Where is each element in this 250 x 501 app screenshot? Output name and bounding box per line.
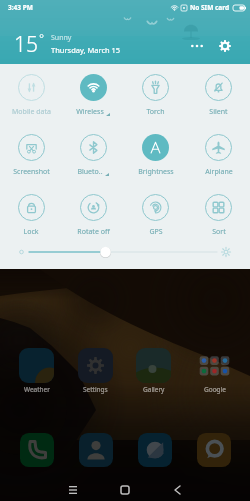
button[interactable]: Google bbox=[191, 348, 238, 394]
staticText: Torch bbox=[146, 107, 165, 117]
staticText: ° bbox=[39, 30, 45, 46]
button[interactable]: Sort bbox=[187, 194, 250, 254]
staticText: No SIM card bbox=[190, 3, 230, 12]
button[interactable]: Back bbox=[165, 479, 189, 501]
button[interactable]: Settings bbox=[72, 348, 119, 394]
button[interactable]: Torch bbox=[124, 74, 187, 134]
staticText: Airplane bbox=[205, 167, 233, 177]
staticText: Sort bbox=[212, 227, 226, 237]
button[interactable]: Messaging bbox=[197, 433, 231, 467]
button[interactable]: Brightness bbox=[124, 134, 187, 194]
button[interactable]: Screenshot bbox=[0, 134, 62, 194]
button[interactable]: Weather bbox=[13, 348, 60, 394]
staticText: GPS bbox=[149, 227, 163, 237]
button[interactable]: Contacts bbox=[79, 433, 113, 467]
staticText: Lock bbox=[23, 227, 39, 237]
staticText: Google bbox=[204, 385, 226, 394]
button[interactable]: Airplane bbox=[187, 134, 250, 194]
button[interactable]: Menu bbox=[61, 479, 85, 501]
button[interactable]: GPS bbox=[124, 194, 187, 254]
button[interactable]: Phone bbox=[20, 433, 54, 467]
button[interactable]: Wireless bbox=[62, 74, 124, 134]
button[interactable]: Browser bbox=[138, 433, 172, 467]
button[interactable]: Mobile data bbox=[0, 74, 62, 134]
staticText: Wireless bbox=[76, 107, 104, 117]
button[interactable]: Settings bbox=[215, 36, 235, 56]
button[interactable]: Silent bbox=[187, 74, 250, 134]
staticText: Thursday, March 15 bbox=[51, 45, 121, 55]
button[interactable]: Blueto.. bbox=[62, 134, 124, 194]
staticText: 15 bbox=[14, 30, 38, 59]
staticText: Weather bbox=[24, 385, 50, 394]
staticText: Brightness bbox=[138, 167, 174, 177]
staticText: Settings bbox=[83, 385, 108, 394]
staticText: Gallery bbox=[143, 385, 165, 394]
staticText: Blueto.. bbox=[77, 167, 103, 177]
button[interactable]: Gallery bbox=[130, 348, 177, 394]
staticText: 3:43 PM bbox=[8, 3, 33, 12]
staticText: Screenshot bbox=[13, 167, 50, 177]
button[interactable]: Lock bbox=[0, 194, 62, 254]
button[interactable]: Home bbox=[113, 479, 137, 501]
button[interactable]: More options bbox=[187, 36, 207, 56]
button[interactable]: Rotate off bbox=[62, 194, 124, 254]
staticText: Sunny bbox=[51, 33, 72, 43]
staticText: Rotate off bbox=[77, 227, 110, 237]
staticText: Mobile data bbox=[12, 107, 51, 117]
staticText: Silent bbox=[209, 107, 228, 117]
